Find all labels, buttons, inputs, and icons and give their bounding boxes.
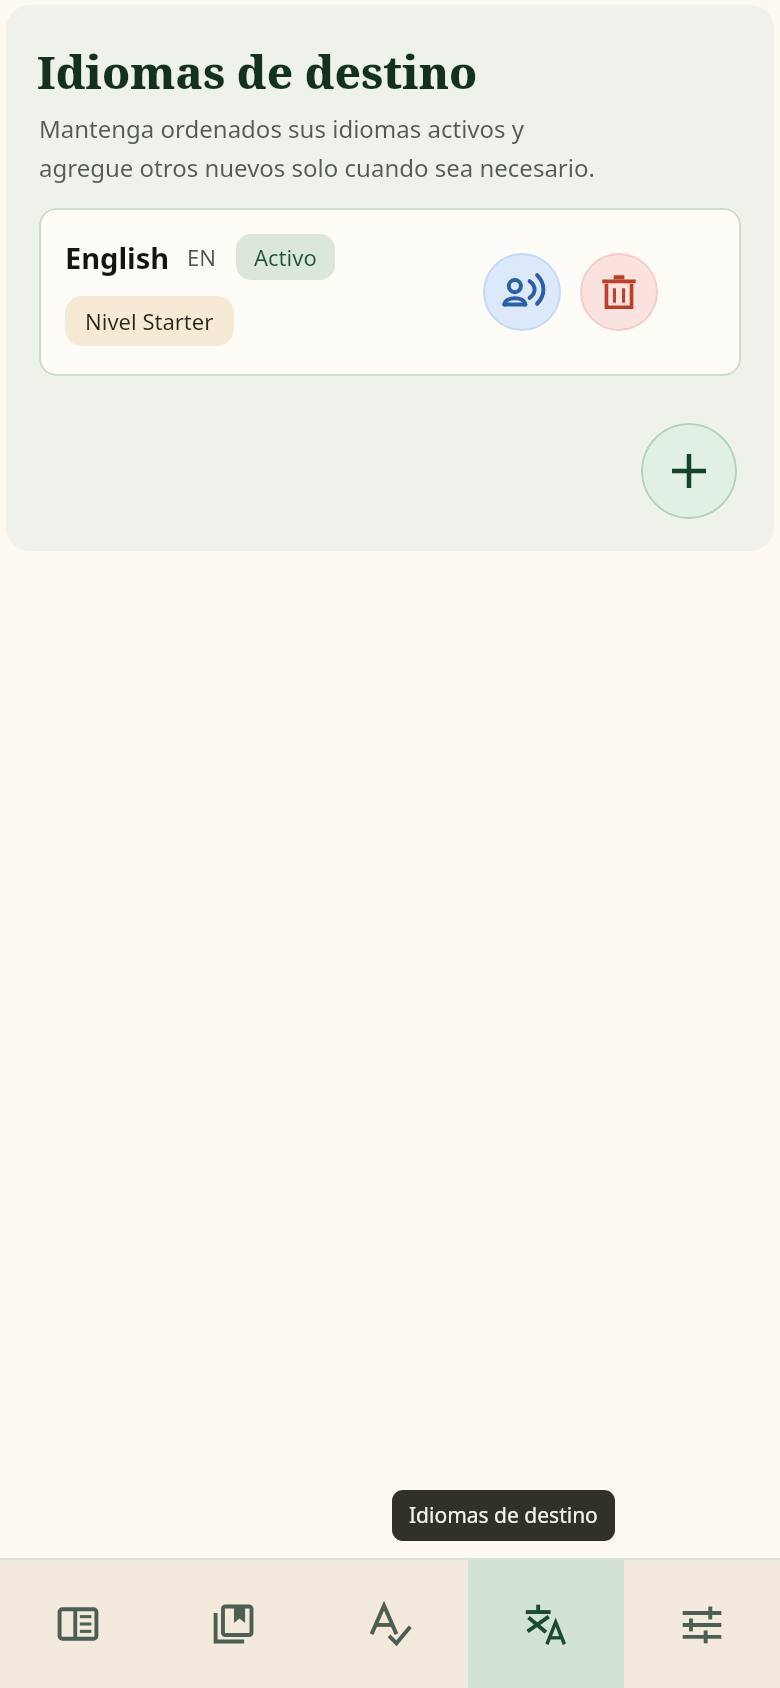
staticText: Idiomas de destino <box>37 41 478 102</box>
staticText: Mantenga ordenados sus idiomas activos y… <box>39 112 595 184</box>
staticText: EN <box>187 242 216 272</box>
button[interactable]: Corrector <box>312 1560 468 1688</box>
button[interactable]: Eliminar <box>580 253 658 331</box>
staticText: Nivel Starter <box>85 306 214 336</box>
button[interactable]: English <box>39 208 741 376</box>
button[interactable]: Idiomas de destino <box>468 1560 624 1688</box>
staticText: English <box>65 238 170 277</box>
staticText: Idiomas de destino <box>409 1501 598 1530</box>
button[interactable]: Biblioteca <box>156 1560 312 1688</box>
button[interactable]: Agregar idioma <box>641 423 737 519</box>
button[interactable]: Ajustes <box>624 1560 780 1688</box>
button[interactable]: Lectura <box>0 1560 156 1688</box>
button[interactable]: Pronunciación <box>483 253 561 331</box>
staticText: Activo <box>254 242 317 272</box>
